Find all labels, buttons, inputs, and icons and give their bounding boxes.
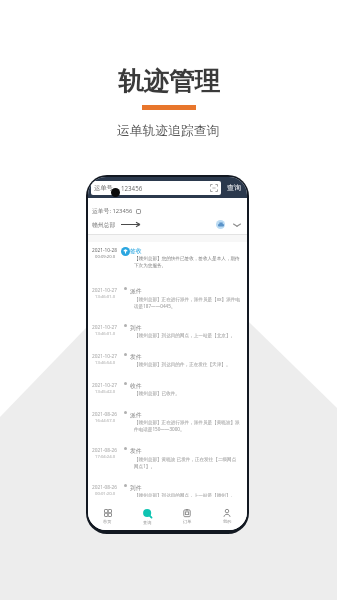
staticText: 17:04:24.0 bbox=[95, 454, 116, 460]
staticText: 运单号: 123456 bbox=[92, 207, 133, 215]
button[interactable]: 2021-10-27 bbox=[88, 280, 247, 317]
button[interactable]: 运单号 bbox=[94, 181, 218, 195]
staticText: 签收 bbox=[130, 247, 142, 254]
staticText: 2021-08-26 bbox=[92, 447, 118, 454]
staticText: 16:44:57.0 bbox=[95, 418, 116, 424]
staticText: 【赣州总部】到达目的网点，上一站是【赣州】。 bbox=[134, 493, 236, 497]
staticText: 【赣州总部】已收件。 bbox=[134, 391, 180, 397]
button[interactable]: Expand bbox=[233, 221, 241, 229]
staticText: 2021-08-26 bbox=[92, 411, 118, 418]
staticText: 2021-10-27 bbox=[92, 382, 118, 389]
button[interactable]: Copy bbox=[136, 209, 141, 214]
staticText: 【赣州总部】黄晓波 已发件，正在发往【二级网点网点1】。 bbox=[134, 456, 240, 470]
other: Scan code bbox=[210, 184, 218, 192]
button[interactable]: Print bbox=[216, 220, 225, 229]
staticText: 2021-10-28 bbox=[92, 247, 118, 254]
staticText: 2021-08-26 bbox=[92, 484, 118, 491]
staticText: 13:46:54.0 bbox=[95, 360, 116, 366]
staticText: 发件 bbox=[130, 447, 142, 454]
staticText: 发件 bbox=[130, 353, 142, 360]
button[interactable]: 2021-10-27 bbox=[88, 317, 247, 346]
button[interactable]: 我的 bbox=[207, 504, 247, 527]
staticText: 我的 bbox=[223, 519, 232, 524]
staticText: 【赣州总部】到达目的网点，上一站是【北京】。 bbox=[134, 333, 236, 339]
button[interactable]: 2021-10-28 bbox=[88, 242, 247, 280]
staticText: 【赣州总部】正在进行派件，派件员是【黄晓波】派件电话是150——3000。 bbox=[134, 420, 240, 433]
button[interactable]: 订单 bbox=[167, 504, 207, 527]
button[interactable]: 查询 bbox=[127, 504, 167, 528]
staticText: 运单轨迹追踪查询 bbox=[117, 123, 220, 139]
staticText: 运单号 bbox=[94, 184, 113, 192]
staticText: 123456 bbox=[121, 184, 143, 192]
staticText: 00:09:20.0 bbox=[95, 254, 116, 260]
staticText: 2021-10-27 bbox=[92, 353, 118, 360]
staticText: 00:01:20.0 bbox=[95, 491, 116, 497]
staticText: 收件 bbox=[130, 382, 142, 389]
staticText: 到件 bbox=[130, 324, 142, 331]
staticText: 到件 bbox=[130, 484, 142, 491]
staticText: 派件 bbox=[130, 411, 142, 418]
staticText: 【赣州总部】正在进行派件，派件员是【xx】派件电话是187——0445。 bbox=[134, 296, 240, 310]
staticText: 【赣州总部】您的快件已签收，签收人是本人，期待下次为您服务。 bbox=[134, 256, 240, 268]
staticText: 赣州总部 bbox=[92, 221, 116, 228]
staticText: 13:46:01.0 bbox=[95, 331, 116, 337]
staticText: 派件 bbox=[130, 287, 142, 294]
staticText: 查询 bbox=[143, 520, 152, 525]
staticText: 【赣州总部】到达目的件，正在发往【天津】。 bbox=[134, 362, 231, 368]
staticText: 查询 bbox=[227, 183, 241, 192]
button[interactable]: 查询 bbox=[227, 183, 241, 192]
staticText: 13:46:01.0 bbox=[95, 294, 116, 300]
staticText: 轨迹管理 bbox=[118, 65, 220, 97]
staticText: 2021-10-27 bbox=[92, 324, 118, 331]
staticText: 2021-10-27 bbox=[92, 287, 118, 294]
staticText: 13:45:42.0 bbox=[95, 389, 116, 395]
staticText: 订单 bbox=[183, 519, 192, 524]
button[interactable]: 2021-08-26 bbox=[88, 404, 247, 440]
button[interactable]: 2021-08-26 bbox=[88, 477, 247, 504]
button[interactable]: 2021-08-26 bbox=[88, 440, 247, 477]
button[interactable]: 2021-10-27 bbox=[88, 375, 247, 404]
button[interactable]: 首页 bbox=[88, 504, 127, 527]
button[interactable]: 2021-10-27 bbox=[88, 346, 247, 375]
staticText: 首页 bbox=[103, 519, 112, 524]
